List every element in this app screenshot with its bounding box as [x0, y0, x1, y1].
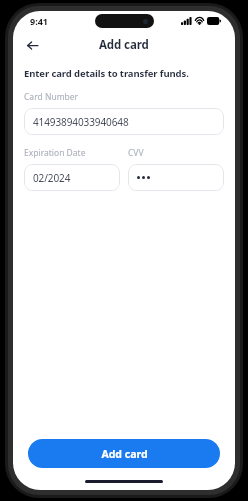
- button[interactable]: 02/2024: [24, 164, 120, 191]
- staticText: 9:41: [30, 15, 48, 27]
- staticText: Enter card details to transfer funds.: [24, 67, 189, 80]
- button[interactable]: Back: [21, 34, 43, 56]
- button[interactable]: Add card: [28, 439, 220, 468]
- staticText: Add card: [101, 447, 148, 461]
- staticText: Card Number: [24, 91, 79, 103]
- button[interactable]: [128, 164, 224, 191]
- button[interactable]: 41493894033940648: [24, 108, 224, 135]
- staticText: CVV: [128, 147, 144, 159]
- staticText: Add card: [99, 37, 149, 53]
- staticText: Expiration Date: [24, 147, 86, 159]
- staticText: 02/2024: [33, 171, 71, 185]
- staticText: 41493894033940648: [33, 115, 129, 129]
